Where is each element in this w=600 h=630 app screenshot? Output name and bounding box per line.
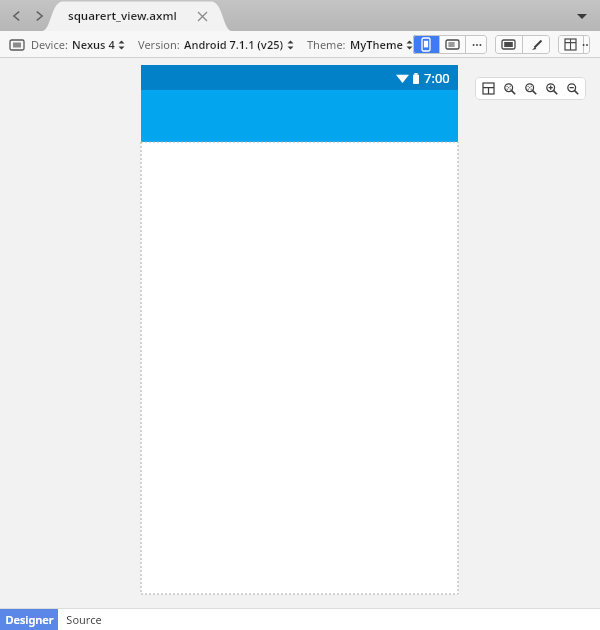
staticText: squarert_view.axml (68, 8, 177, 24)
button[interactable]: Fit to window (478, 78, 499, 99)
staticText: Android 7.1.1 (v25) (184, 37, 284, 52)
button[interactable]: More orientations (466, 35, 487, 54)
staticText: Nexus 4 (72, 37, 115, 52)
staticText: Theme: (307, 37, 346, 52)
staticText: Device: (31, 37, 68, 52)
button[interactable]: Zoom out (562, 78, 583, 99)
button[interactable]: Theme: (307, 37, 413, 52)
button[interactable]: Portrait (413, 35, 439, 54)
button[interactable]: Designer (0, 609, 58, 630)
button[interactable]: Back (4, 2, 28, 30)
button[interactable]: Forward (28, 2, 52, 30)
staticText: Version: (138, 37, 180, 52)
button[interactable]: Device: (31, 37, 125, 52)
button[interactable]: Tab list (572, 6, 592, 26)
button[interactable]: Grid (558, 35, 583, 54)
staticText: MyTheme (350, 37, 403, 52)
button[interactable]: Close tab (194, 8, 210, 24)
staticText: Designer (5, 612, 54, 627)
button[interactable]: Source (58, 609, 110, 630)
button[interactable]: Zoom to fit (520, 78, 541, 99)
staticText: Source (66, 612, 102, 627)
button[interactable]: Theme editor (523, 35, 550, 54)
button[interactable]: More options (584, 35, 590, 54)
button[interactable]: Version: (138, 37, 294, 52)
button[interactable]: Landscape (440, 35, 465, 54)
button[interactable]: Zoom to actual size (499, 78, 520, 99)
staticText: 7:00 (424, 69, 450, 87)
button[interactable]: Zoom in (541, 78, 562, 99)
button[interactable]: squarert_view.axml (42, 0, 232, 31)
button[interactable]: Device frame (495, 35, 522, 54)
